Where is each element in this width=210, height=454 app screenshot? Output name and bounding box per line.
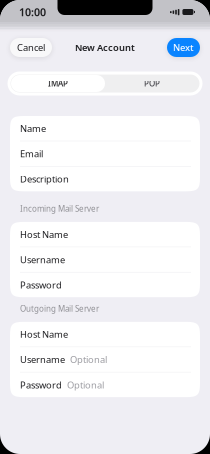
button[interactable]: Password [10,272,200,297]
staticText: Email [20,147,43,160]
button[interactable]: Cancel [10,38,52,57]
staticText: Next [173,41,194,54]
staticText: IMAP [48,78,68,89]
staticText: Host Name [20,328,68,340]
staticText: Username [20,253,65,266]
staticText: POP [144,78,160,89]
button[interactable]: Username [10,347,200,372]
staticText: Outgoing Mail Server [20,303,99,314]
button[interactable]: Next [167,38,200,57]
staticText: Description [20,173,69,185]
staticText: Password [20,279,62,291]
button[interactable]: Host Name [10,322,200,346]
staticText: Incoming Mail Server [20,203,99,214]
staticText: Username [20,353,65,366]
staticText: Host Name [20,228,68,240]
button[interactable]: Description [10,167,200,191]
staticText: Name [20,122,46,135]
button[interactable]: Username [10,247,200,272]
staticText: Cancel [17,41,45,54]
staticText: Optional [70,353,107,366]
staticText: 10:00 [19,5,46,19]
button[interactable]: Name [10,116,200,141]
staticText: New Account [75,41,135,54]
button[interactable]: IMAP [11,75,105,92]
staticText: Password [20,379,62,391]
button[interactable]: Password [10,372,200,397]
button[interactable]: Email [10,141,200,166]
button[interactable]: Host Name [10,222,200,247]
staticText: Optional [67,379,104,391]
button[interactable]: POP [105,75,199,92]
